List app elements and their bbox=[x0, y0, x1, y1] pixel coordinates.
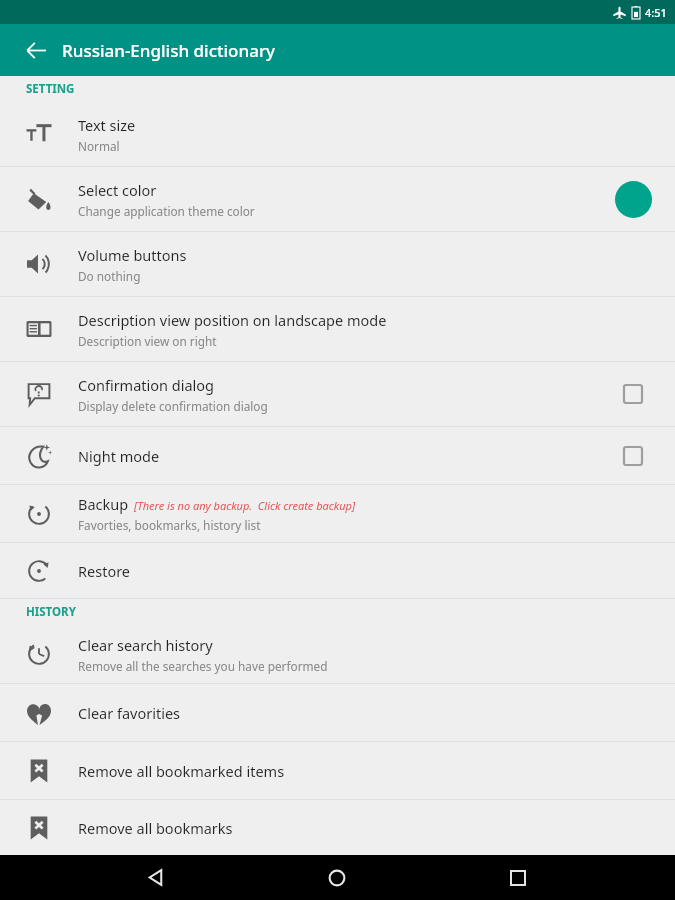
staticText: Change application theme color bbox=[78, 203, 255, 219]
staticText: Select color bbox=[78, 180, 157, 200]
button[interactable]: Select color bbox=[0, 167, 675, 231]
staticText: Description view position on landscape m… bbox=[78, 310, 387, 330]
button[interactable]: Toggle bbox=[618, 441, 648, 471]
staticText: Restore bbox=[78, 561, 131, 581]
button[interactable]: Backup bbox=[0, 485, 675, 542]
staticText: SETTING bbox=[26, 81, 75, 97]
button[interactable]: Clear favorities bbox=[0, 684, 675, 741]
staticText: 4:51 bbox=[645, 5, 667, 20]
staticText: Normal bbox=[78, 138, 120, 154]
button[interactable]: Recent apps bbox=[494, 855, 542, 900]
staticText: [There is no any backup. Click create ba… bbox=[134, 498, 356, 513]
button[interactable]: Confirmation dialog bbox=[0, 362, 675, 426]
staticText: Favorties, bookmarks, history list bbox=[78, 517, 261, 533]
button[interactable]: Volume buttons bbox=[0, 232, 675, 296]
button[interactable]: Home bbox=[313, 855, 361, 900]
staticText: Confirmation dialog bbox=[78, 375, 215, 395]
button[interactable]: Back bbox=[132, 855, 180, 900]
button[interactable]: Clear search history bbox=[0, 625, 675, 683]
staticText: Night mode bbox=[78, 446, 160, 466]
staticText: HISTORY bbox=[26, 604, 76, 620]
staticText: Remove all the searches you have perform… bbox=[78, 658, 328, 674]
staticText: Remove all bookmarks bbox=[78, 818, 233, 838]
button[interactable]: Text size bbox=[0, 102, 675, 166]
button[interactable]: Back bbox=[18, 32, 54, 68]
staticText: Volume buttons bbox=[78, 245, 187, 265]
button[interactable]: Toggle bbox=[618, 379, 648, 409]
staticText: Do nothing bbox=[78, 268, 141, 284]
staticText: Display delete confirmation dialog bbox=[78, 398, 268, 414]
button[interactable]: Night mode bbox=[0, 427, 675, 484]
staticText: Clear search history bbox=[78, 635, 213, 655]
button[interactable]: Remove all bookmarked items bbox=[0, 742, 675, 799]
staticText: Backup bbox=[78, 494, 129, 514]
staticText: Clear favorities bbox=[78, 703, 181, 723]
staticText: Russian-English dictionary bbox=[62, 39, 276, 62]
button[interactable]: Description view position on landscape m… bbox=[0, 297, 675, 361]
button[interactable]: Remove all bookmarks bbox=[0, 800, 675, 855]
button[interactable]: Theme color bbox=[615, 181, 652, 218]
staticText: Description view on right bbox=[78, 333, 217, 349]
staticText: Remove all bookmarked items bbox=[78, 761, 285, 781]
staticText: Text size bbox=[78, 115, 136, 135]
button[interactable]: Restore bbox=[0, 543, 675, 598]
